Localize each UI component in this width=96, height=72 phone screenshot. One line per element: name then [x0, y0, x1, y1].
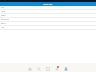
button[interactable]: Wi-Fi — [0, 6, 96, 10]
button[interactable]: Library — [43, 63, 52, 72]
button[interactable]: Sound — [0, 10, 96, 14]
button[interactable]: Notifications — [0, 18, 96, 22]
button[interactable]: Profile — [61, 63, 70, 72]
button[interactable]: Notifications — [52, 63, 61, 72]
button[interactable]: Home — [25, 63, 34, 72]
button[interactable]: Apps — [0, 26, 96, 30]
staticText: Notifications — [1, 19, 9, 21]
button[interactable]: Display — [0, 14, 96, 18]
staticText: Sound — [1, 11, 6, 13]
staticText: Display — [1, 15, 6, 17]
button[interactable]: Search — [34, 63, 43, 72]
staticText: Settings — [43, 2, 53, 5]
staticText: Wi-Fi — [1, 7, 5, 9]
staticText: Battery — [1, 23, 6, 25]
staticText: Apps — [1, 27, 5, 29]
button[interactable]: Battery — [0, 22, 96, 26]
